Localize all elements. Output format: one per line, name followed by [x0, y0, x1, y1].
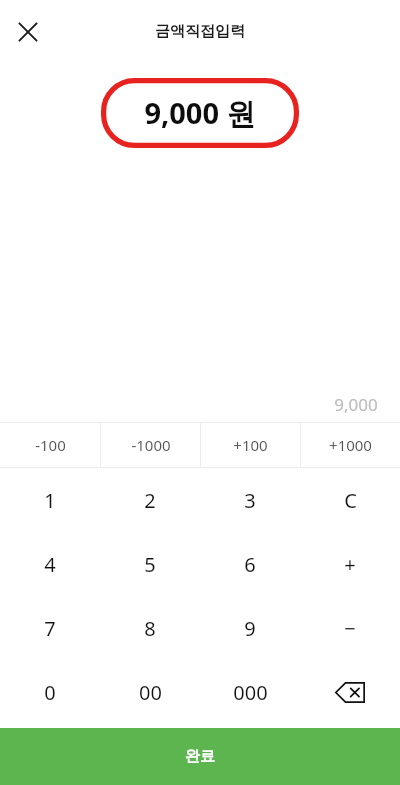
staticText: 9: [244, 615, 256, 642]
staticText: 3: [244, 487, 256, 514]
staticText: +: [344, 551, 356, 578]
button[interactable]: 7: [0, 596, 100, 660]
button[interactable]: 00: [100, 660, 200, 724]
button[interactable]: −: [300, 596, 400, 660]
button[interactable]: -1000: [101, 423, 200, 467]
button[interactable]: 9,000 원: [101, 78, 299, 148]
button[interactable]: 1: [0, 468, 100, 532]
staticText: −: [344, 615, 356, 642]
button[interactable]: Backspace: [300, 660, 400, 724]
staticText: 5: [144, 551, 156, 578]
staticText: 1: [44, 487, 56, 514]
staticText: 금액직접입력: [0, 22, 400, 41]
staticText: 2: [144, 487, 156, 514]
button[interactable]: Close: [4, 8, 52, 56]
staticText: 6: [244, 551, 256, 578]
staticText: 8: [144, 615, 156, 642]
staticText: 4: [44, 551, 56, 578]
button[interactable]: 4: [0, 532, 100, 596]
button[interactable]: 6: [200, 532, 300, 596]
button[interactable]: 9: [200, 596, 300, 660]
button[interactable]: 000: [200, 660, 300, 724]
staticText: 9,000 원: [101, 93, 299, 133]
button[interactable]: 8: [100, 596, 200, 660]
button[interactable]: 2: [100, 468, 200, 532]
button[interactable]: +1000: [301, 423, 400, 467]
button[interactable]: +: [300, 532, 400, 596]
staticText: 00: [139, 679, 162, 706]
button[interactable]: 0: [0, 660, 100, 724]
staticText: +1000: [329, 435, 372, 455]
button[interactable]: 5: [100, 532, 200, 596]
staticText: -1000: [131, 435, 171, 455]
button[interactable]: -100: [0, 423, 100, 467]
staticText: 9,000: [334, 393, 378, 416]
staticText: 0: [44, 679, 56, 706]
button[interactable]: 3: [200, 468, 300, 532]
staticText: +100: [233, 435, 268, 455]
staticText: 7: [44, 615, 56, 642]
staticText: 000: [233, 679, 268, 706]
staticText: C: [344, 487, 357, 514]
staticText: 완료: [185, 747, 215, 766]
button[interactable]: +100: [201, 423, 300, 467]
staticText: -100: [35, 435, 66, 455]
button[interactable]: 완료: [0, 728, 400, 785]
button[interactable]: C: [300, 468, 400, 532]
